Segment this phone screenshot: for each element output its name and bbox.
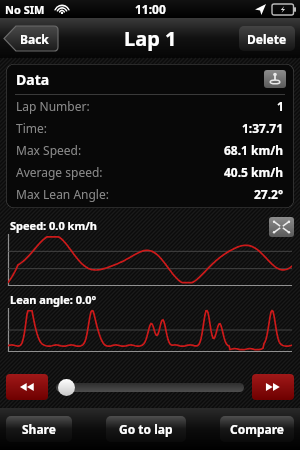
button[interactable]: Expand graph	[269, 217, 294, 237]
staticText: 27.2°	[254, 186, 284, 202]
staticText: Go to lap	[119, 421, 173, 437]
staticText: Lap 1	[124, 25, 177, 52]
staticText: Back	[20, 31, 49, 47]
button[interactable]: Lap Number:	[16, 95, 284, 117]
staticText: 40.5 km/h	[224, 164, 284, 180]
staticText: 1:37.71	[242, 120, 284, 136]
button[interactable]	[56, 383, 244, 392]
staticText: 1	[277, 98, 284, 114]
staticText: 68.1 km/h	[224, 142, 284, 158]
button[interactable]: Average speed:	[16, 161, 284, 183]
staticText: 11:00	[135, 1, 166, 17]
staticText: Data	[16, 70, 50, 89]
staticText: Time:	[16, 120, 47, 136]
button[interactable]: Delete	[239, 26, 295, 51]
button[interactable]: Go to lap	[106, 416, 186, 442]
staticText: Delete	[247, 31, 287, 47]
staticText: Speed: 0.0 km/h	[10, 218, 97, 233]
button[interactable]: Max Lean Angle:	[16, 183, 284, 205]
button[interactable]: Time:	[16, 117, 284, 139]
button[interactable]: Fast forward	[252, 374, 294, 400]
staticText: Lap Number:	[16, 98, 90, 114]
staticText: Lean angle: 0.0°	[10, 292, 97, 307]
button[interactable]: Rewind	[6, 374, 48, 400]
button[interactable]: Back	[4, 26, 58, 51]
staticText: Compare	[230, 421, 284, 437]
button[interactable]: Compare	[220, 416, 294, 442]
staticText: Max Lean Angle:	[16, 186, 109, 202]
staticText: No SIM	[5, 2, 45, 17]
button[interactable]: Lean angle view	[264, 70, 286, 88]
staticText: Max Speed:	[16, 142, 82, 158]
button[interactable]: Max Speed:	[16, 139, 284, 161]
staticText: Average speed:	[16, 164, 103, 180]
button[interactable]: Share	[6, 416, 72, 442]
staticText: Share	[22, 421, 56, 437]
